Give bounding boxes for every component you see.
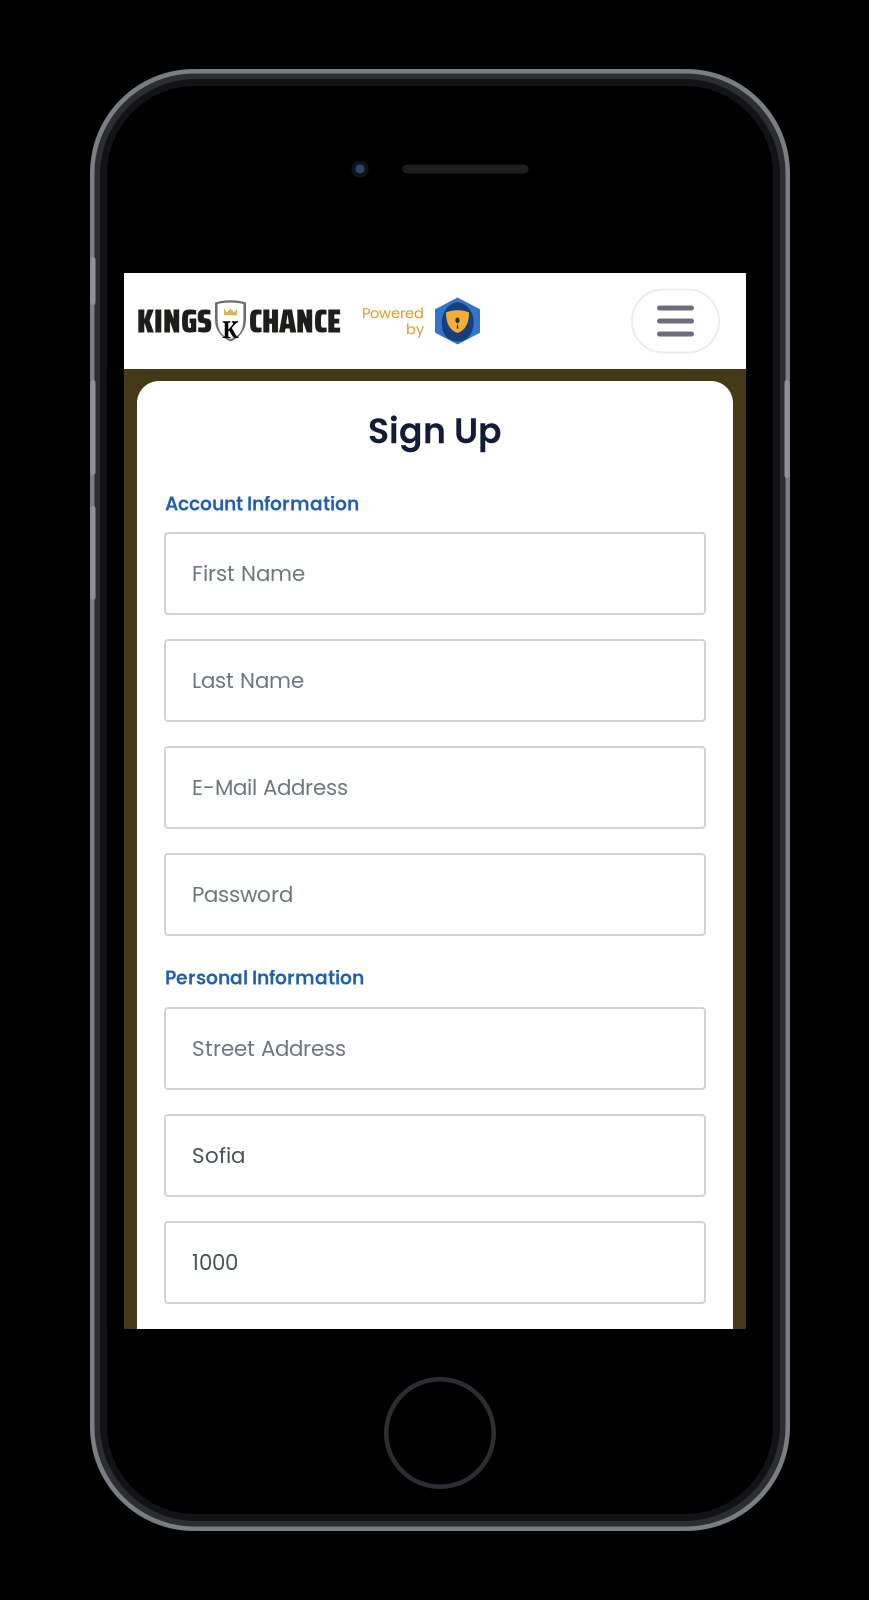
button[interactable]: Street Address	[165, 1008, 705, 1089]
staticText: First Name	[192, 559, 305, 588]
staticText: Sign Up	[368, 407, 502, 455]
button[interactable]: Menu	[632, 289, 719, 352]
staticText: Powered	[362, 303, 424, 323]
button[interactable]: First Name	[165, 533, 705, 614]
button[interactable]: 1000	[165, 1222, 705, 1303]
staticText: CHANCE	[249, 295, 341, 347]
staticText: K	[222, 314, 239, 345]
button[interactable]: E-Mail Address	[165, 747, 705, 828]
button[interactable]: Sofia	[165, 1115, 705, 1196]
staticText: KINGS	[137, 295, 212, 347]
staticText: E-Mail Address	[192, 773, 348, 802]
button[interactable]: Password	[165, 854, 705, 935]
staticText: 1000	[192, 1248, 238, 1277]
button[interactable]: Last Name	[165, 640, 705, 721]
staticText: Last Name	[192, 666, 304, 695]
staticText: Personal Information	[165, 965, 364, 991]
staticText: Sofia	[192, 1141, 245, 1170]
button[interactable]: KINGS	[137, 295, 341, 347]
staticText: Street Address	[192, 1034, 346, 1063]
staticText: by	[406, 319, 424, 339]
staticText: Account Information	[165, 491, 359, 517]
staticText: Password	[192, 880, 293, 909]
